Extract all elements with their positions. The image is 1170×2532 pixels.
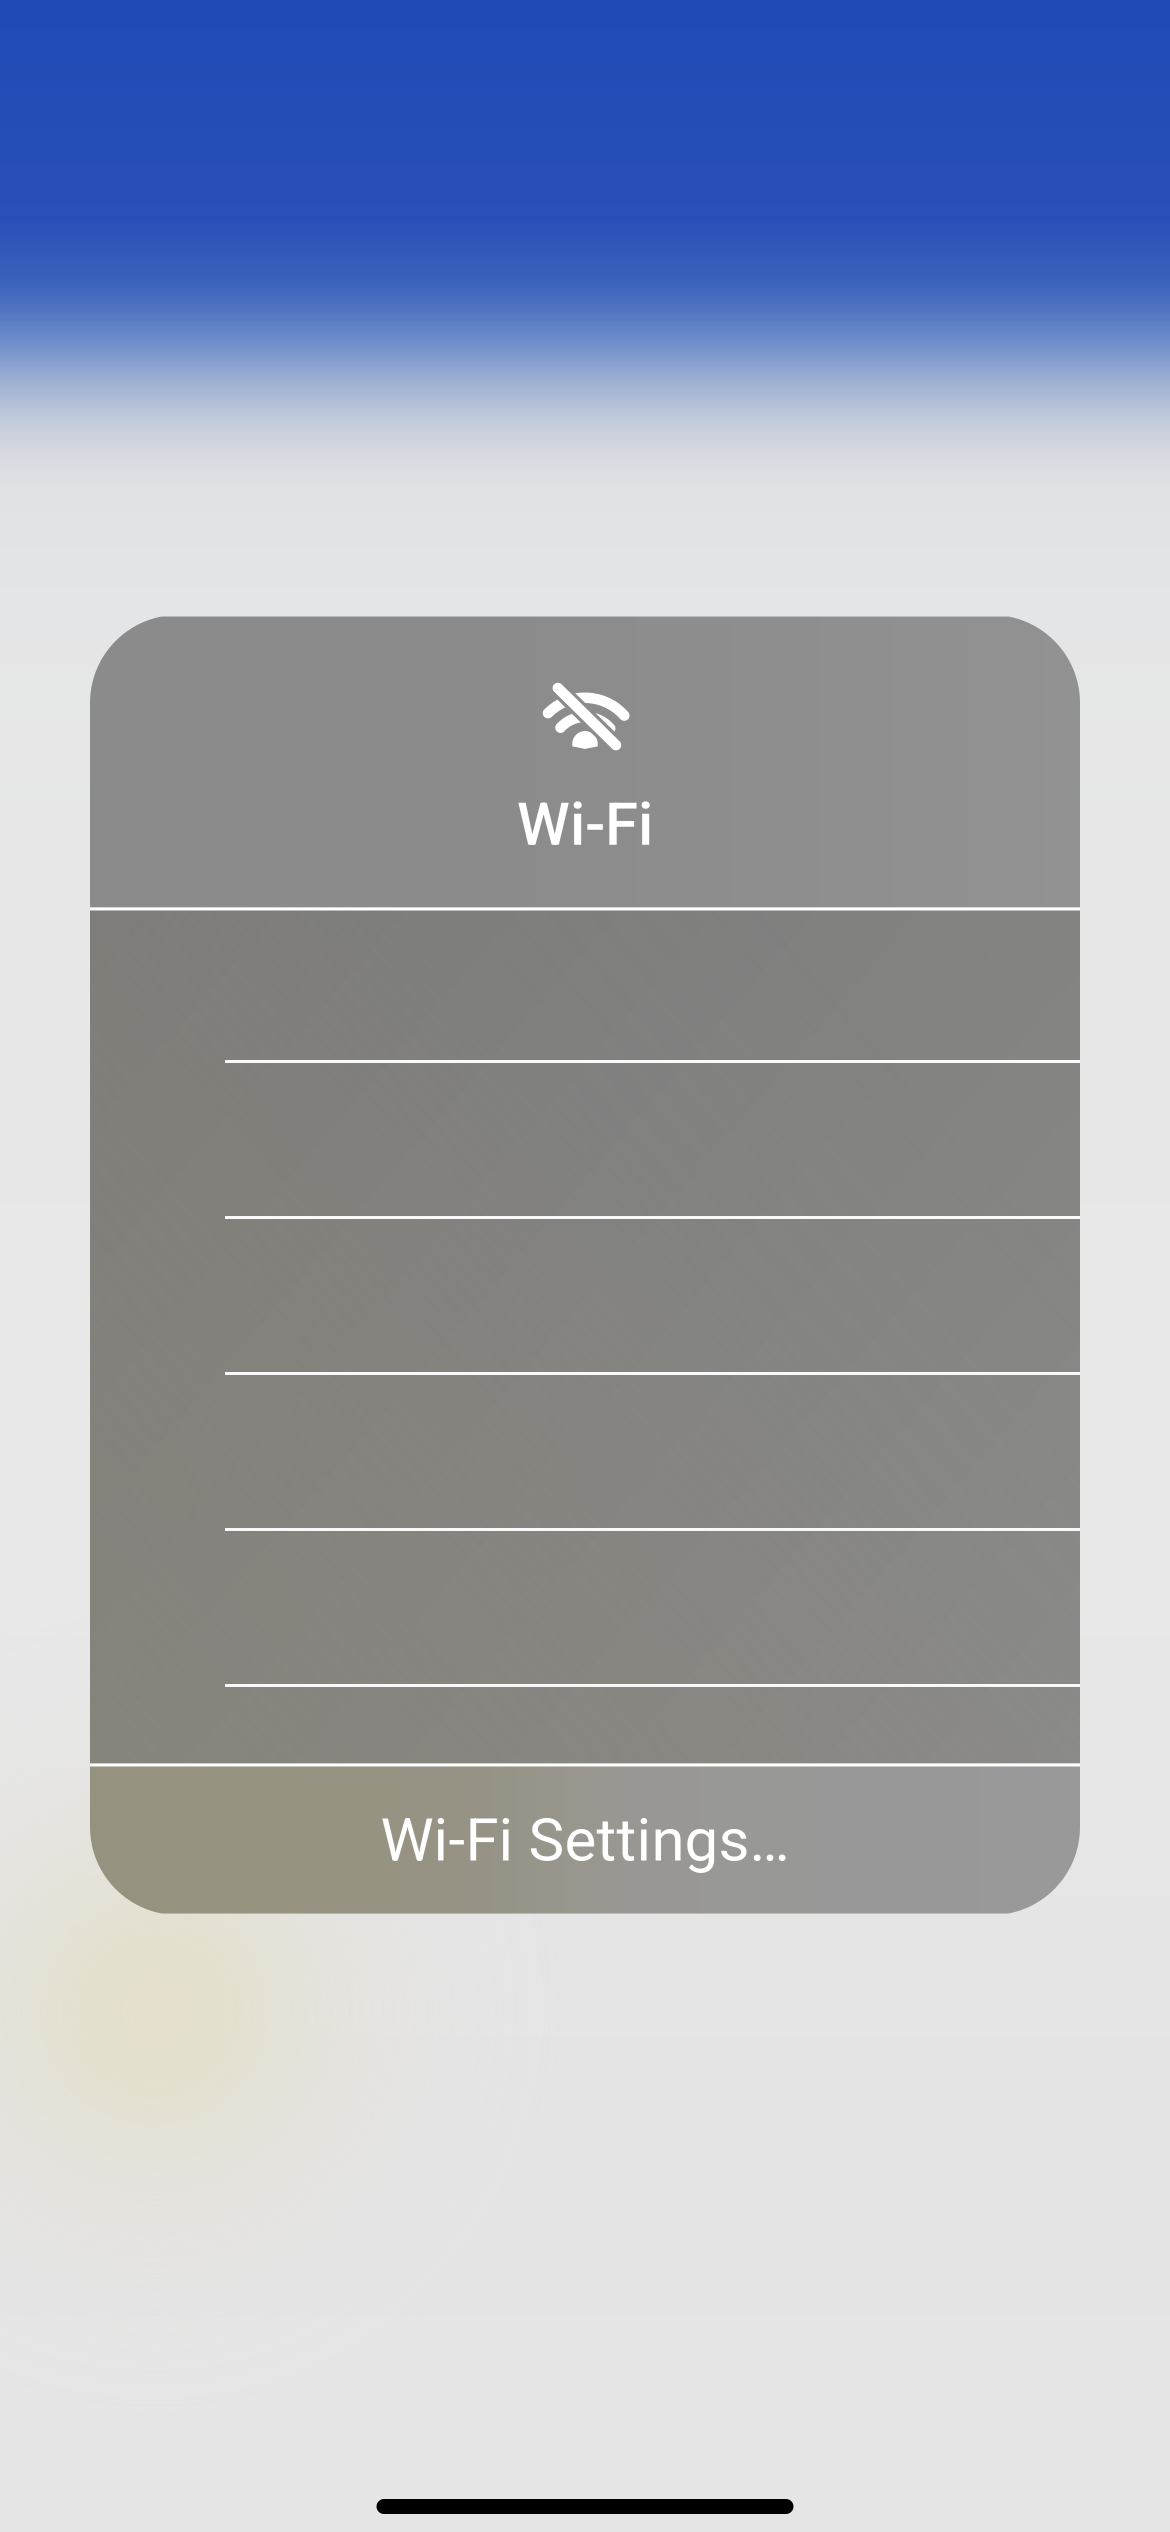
button[interactable] <box>90 1531 1080 1684</box>
button[interactable] <box>90 1687 1080 1767</box>
button[interactable]: Wi-Fi Settings… <box>90 1766 1080 1913</box>
staticText: Wi-Fi <box>517 789 653 859</box>
button[interactable]: Wi-Fi off <box>90 616 1080 907</box>
button[interactable] <box>90 1219 1080 1372</box>
button[interactable] <box>90 1375 1080 1528</box>
button[interactable] <box>90 1063 1080 1216</box>
staticText: Wi-Fi Settings… <box>380 1805 789 1875</box>
button[interactable] <box>90 907 1080 1060</box>
